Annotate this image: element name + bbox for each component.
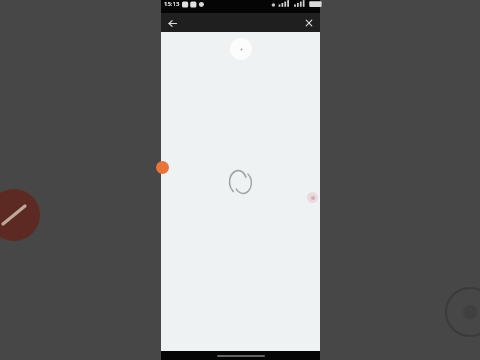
button[interactable]: Faded item [307, 192, 318, 203]
staticText: 15:13 [164, 0, 180, 8]
button[interactable]: Marker [230, 38, 252, 60]
button[interactable]: Home gesture handle [217, 355, 265, 357]
button[interactable]: Nearby item [156, 161, 169, 174]
button[interactable]: Close [302, 16, 316, 30]
button[interactable]: Back [165, 16, 179, 30]
